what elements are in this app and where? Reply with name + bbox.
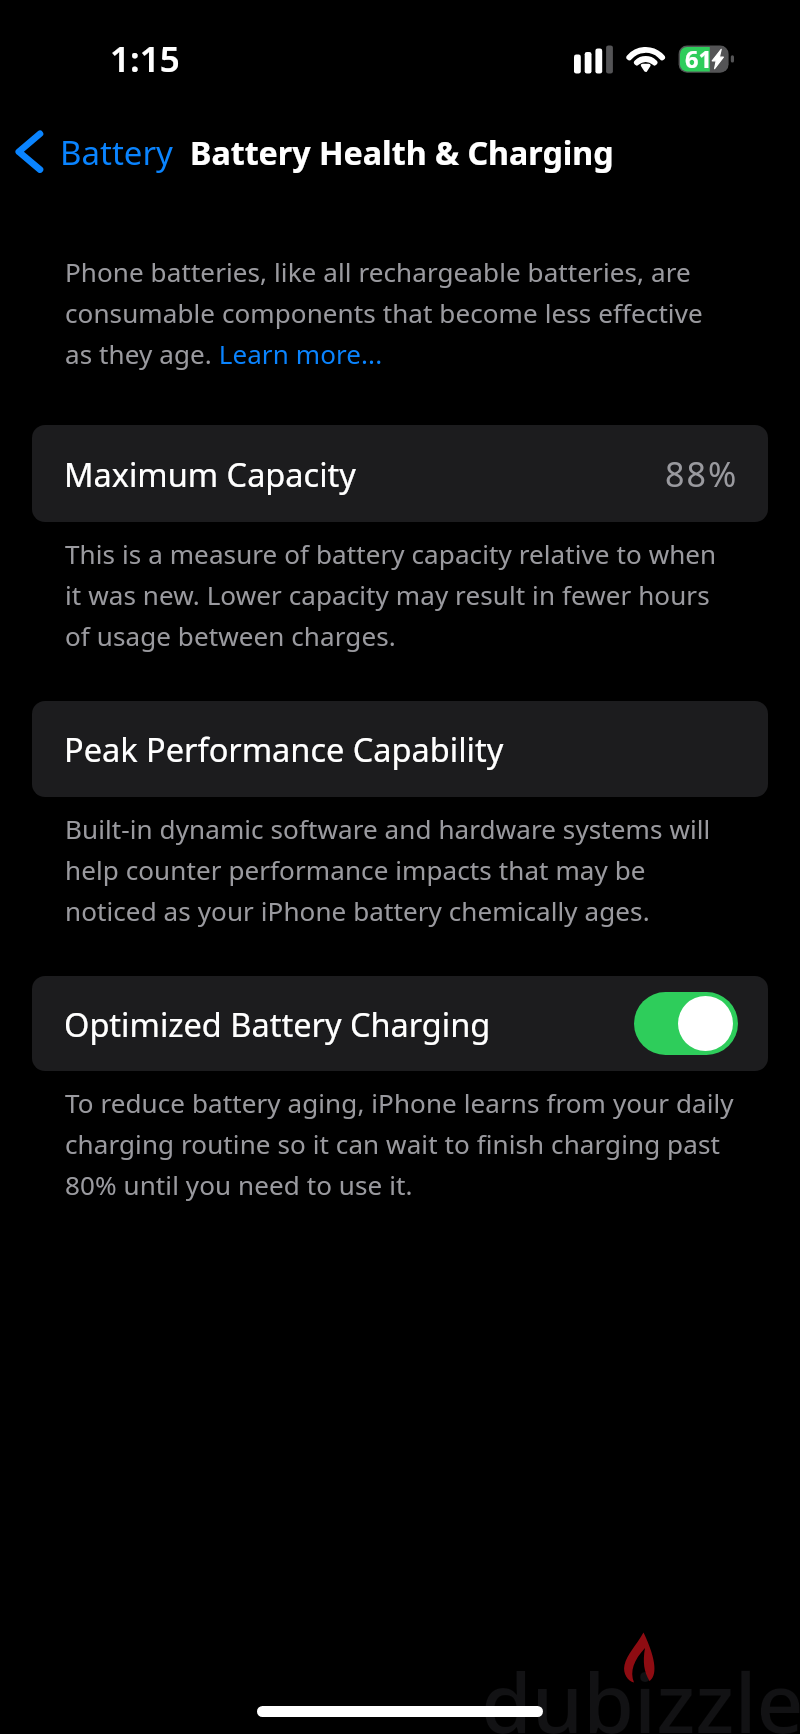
staticText: Built-in dynamic software and hardware s… <box>65 807 735 930</box>
staticText: Battery Health & Charging <box>190 131 614 175</box>
staticText: Battery <box>60 130 173 175</box>
staticText: Phone batteries, like all rechargeable b… <box>65 250 735 373</box>
staticText: Optimized Battery Charging <box>64 1002 491 1046</box>
staticText: Maximum Capacity <box>64 452 356 496</box>
staticText: 88% <box>665 451 739 497</box>
staticText: To reduce battery aging, iPhone learns f… <box>65 1081 735 1204</box>
staticText: 61 <box>685 43 712 75</box>
button[interactable]: Optimized Battery Charging <box>32 976 768 1071</box>
staticText: 1:15 <box>110 35 180 78</box>
button[interactable]: Optimized Battery Charging toggle <box>634 992 738 1055</box>
staticText: This is a measure of battery capacity re… <box>65 532 735 655</box>
button[interactable]: Peak Performance Capability <box>32 701 768 797</box>
staticText: Peak Performance Capability <box>64 727 504 771</box>
staticText: dubizzle <box>481 1645 800 1734</box>
button[interactable]: Maximum Capacity <box>32 425 768 522</box>
button[interactable]: Back to Battery <box>10 122 173 182</box>
